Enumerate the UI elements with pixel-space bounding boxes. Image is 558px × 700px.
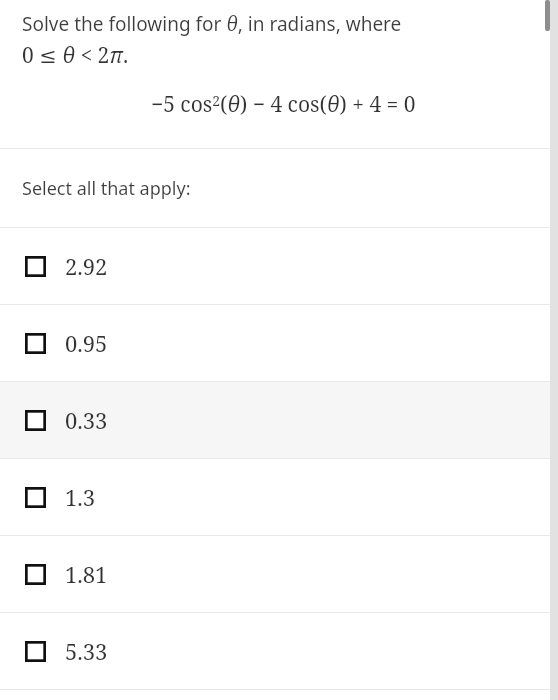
staticText: 1.81 <box>65 559 108 589</box>
staticText: 0 ≤ θ < 2π. <box>22 41 129 70</box>
button[interactable]: 0.33 <box>0 382 558 458</box>
staticText: Select all that apply: <box>22 176 191 201</box>
other: Scroll position indicator <box>545 0 550 31</box>
button[interactable]: 1.81 <box>0 536 558 612</box>
staticText: −5 cos2(θ) − 4 cos(θ) + 4 = 0 <box>151 90 416 119</box>
button[interactable]: 0.95 <box>0 305 558 381</box>
staticText: 5.33 <box>65 636 108 666</box>
staticText: 2.92 <box>65 251 108 281</box>
staticText: 0.33 <box>65 405 108 435</box>
button[interactable]: 5.33 <box>0 613 558 689</box>
button[interactable]: 1.3 <box>0 459 558 535</box>
staticText: 1.3 <box>65 482 96 512</box>
staticText: Solve the following for θ, in radians, w… <box>22 11 402 37</box>
staticText: 0.95 <box>65 328 108 358</box>
button[interactable]: 2.92 <box>0 228 558 304</box>
